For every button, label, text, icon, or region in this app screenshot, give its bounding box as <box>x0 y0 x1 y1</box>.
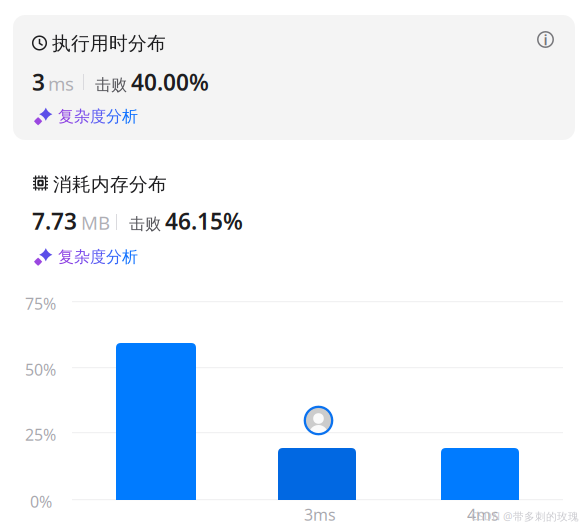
staticText: 度 <box>90 106 106 126</box>
staticText: 执行用时分布 <box>52 32 166 55</box>
staticText: 杂 <box>74 247 90 267</box>
staticText: 击败 <box>95 75 127 95</box>
staticText: 40.00% <box>131 67 209 97</box>
staticText: MB <box>81 210 110 235</box>
staticText: 4ms <box>467 504 499 525</box>
staticText: ms <box>48 71 74 96</box>
staticText: CSDN @带多刺的玫瑰 <box>471 509 579 523</box>
staticText: 复 <box>58 106 74 126</box>
staticText: 析 <box>122 106 138 126</box>
button[interactable]: 复 <box>34 106 138 126</box>
staticText: 复 <box>58 247 74 267</box>
staticText: 25% <box>25 424 56 445</box>
staticText: 3ms <box>304 504 336 525</box>
staticText: 0% <box>30 491 52 512</box>
staticText: 75% <box>25 293 56 314</box>
staticText: 3 <box>32 67 45 97</box>
button[interactable]: 说明 <box>536 30 555 49</box>
staticText: 击败 <box>129 214 161 234</box>
staticText: 杂 <box>74 106 90 126</box>
staticText: 50% <box>25 359 56 380</box>
staticText: 7.73 <box>32 206 77 236</box>
staticText: 析 <box>122 247 138 267</box>
staticText: 46.15% <box>165 206 243 236</box>
button[interactable]: 复 <box>34 247 138 267</box>
staticText: i <box>543 30 547 49</box>
staticText: 分 <box>106 247 122 267</box>
staticText: 消耗内存分布 <box>53 173 167 196</box>
staticText: 分 <box>106 106 122 126</box>
staticText: 度 <box>90 247 106 267</box>
